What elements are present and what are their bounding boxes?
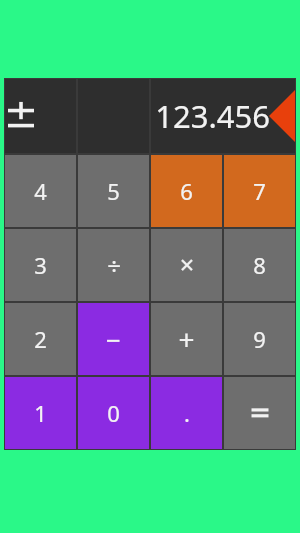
button[interactable]: 8 xyxy=(224,229,295,301)
button[interactable]: 6 xyxy=(151,155,222,227)
button[interactable]: 5 xyxy=(78,155,149,227)
staticText: 2 xyxy=(34,324,47,354)
staticText: 7 xyxy=(253,176,266,206)
button[interactable]: 7 xyxy=(224,155,295,227)
button[interactable]: 2 xyxy=(5,303,76,375)
button[interactable]: Toggle sign xyxy=(5,79,76,153)
staticText: 8 xyxy=(253,250,266,280)
staticText: ✕ xyxy=(179,254,195,276)
staticText: + xyxy=(178,320,195,358)
staticText: 3 xyxy=(34,250,47,280)
button[interactable]: 9 xyxy=(224,303,295,375)
button[interactable]: Plus xyxy=(151,303,222,375)
staticText: 4 xyxy=(34,176,47,206)
staticText: 123.456 xyxy=(151,95,270,137)
staticText: − xyxy=(106,322,121,357)
button[interactable]: Backspace xyxy=(269,90,295,142)
staticText: 0 xyxy=(107,398,120,428)
staticText: 1 xyxy=(34,398,47,428)
staticText: . xyxy=(184,398,190,428)
button[interactable]: 1 xyxy=(5,377,76,449)
button[interactable]: Decimal point xyxy=(151,377,222,449)
button[interactable]: 4 xyxy=(5,155,76,227)
staticText: 6 xyxy=(180,176,193,206)
button[interactable]: Multiply xyxy=(151,229,222,301)
button[interactable]: 0 xyxy=(78,377,149,449)
button[interactable]: 3 xyxy=(5,229,76,301)
button[interactable]: Equals xyxy=(224,377,295,449)
button[interactable]: Divide xyxy=(78,229,149,301)
staticText: ÷ xyxy=(107,249,121,282)
staticText: 9 xyxy=(253,324,266,354)
button[interactable]: Minus xyxy=(78,303,149,375)
staticText: 5 xyxy=(107,176,120,206)
